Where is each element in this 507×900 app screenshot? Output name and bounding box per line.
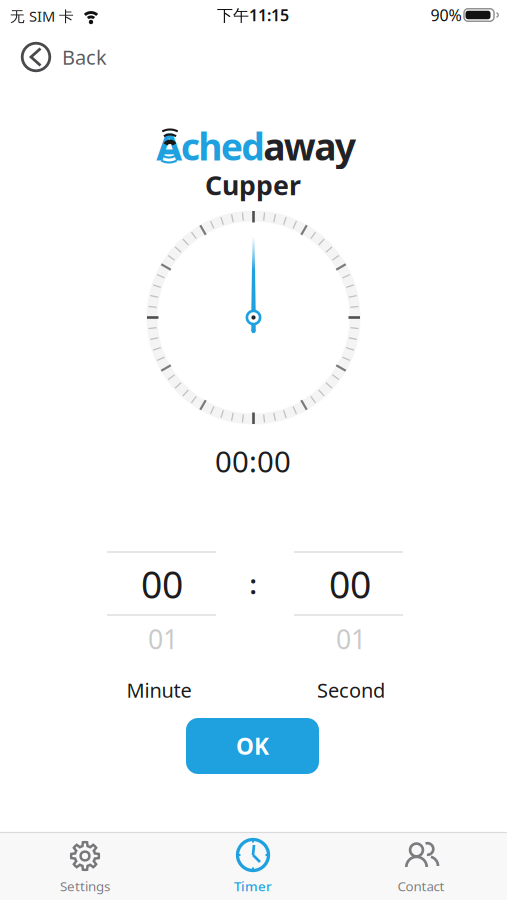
staticText: Timer bbox=[234, 877, 272, 895]
button[interactable]: Settings bbox=[52, 832, 118, 896]
staticText: Settings bbox=[60, 877, 110, 895]
button[interactable]: Timer bbox=[220, 832, 286, 896]
staticText: OK bbox=[236, 731, 269, 761]
staticText: away bbox=[263, 121, 356, 171]
staticText: Minute bbox=[126, 677, 191, 703]
staticText: 下午11:15 bbox=[217, 4, 289, 26]
staticText: 01 bbox=[336, 621, 366, 657]
staticText: Back bbox=[62, 44, 107, 70]
staticText: 00 bbox=[329, 559, 371, 609]
staticText: Second bbox=[317, 677, 385, 703]
staticText: 无 SIM 卡 bbox=[10, 6, 74, 26]
staticText: 00 bbox=[141, 559, 183, 609]
button[interactable]: OK bbox=[186, 718, 319, 774]
staticText: : bbox=[249, 566, 256, 602]
staticText: 90% bbox=[430, 4, 461, 26]
button[interactable]: Contact bbox=[388, 832, 454, 896]
staticText: 01 bbox=[148, 621, 178, 657]
staticText: Cupper bbox=[205, 167, 301, 203]
staticText: Ached bbox=[156, 121, 265, 171]
staticText: Contact bbox=[397, 877, 444, 895]
button[interactable]: Back bbox=[10, 31, 130, 83]
staticText: 00:00 bbox=[215, 441, 291, 480]
